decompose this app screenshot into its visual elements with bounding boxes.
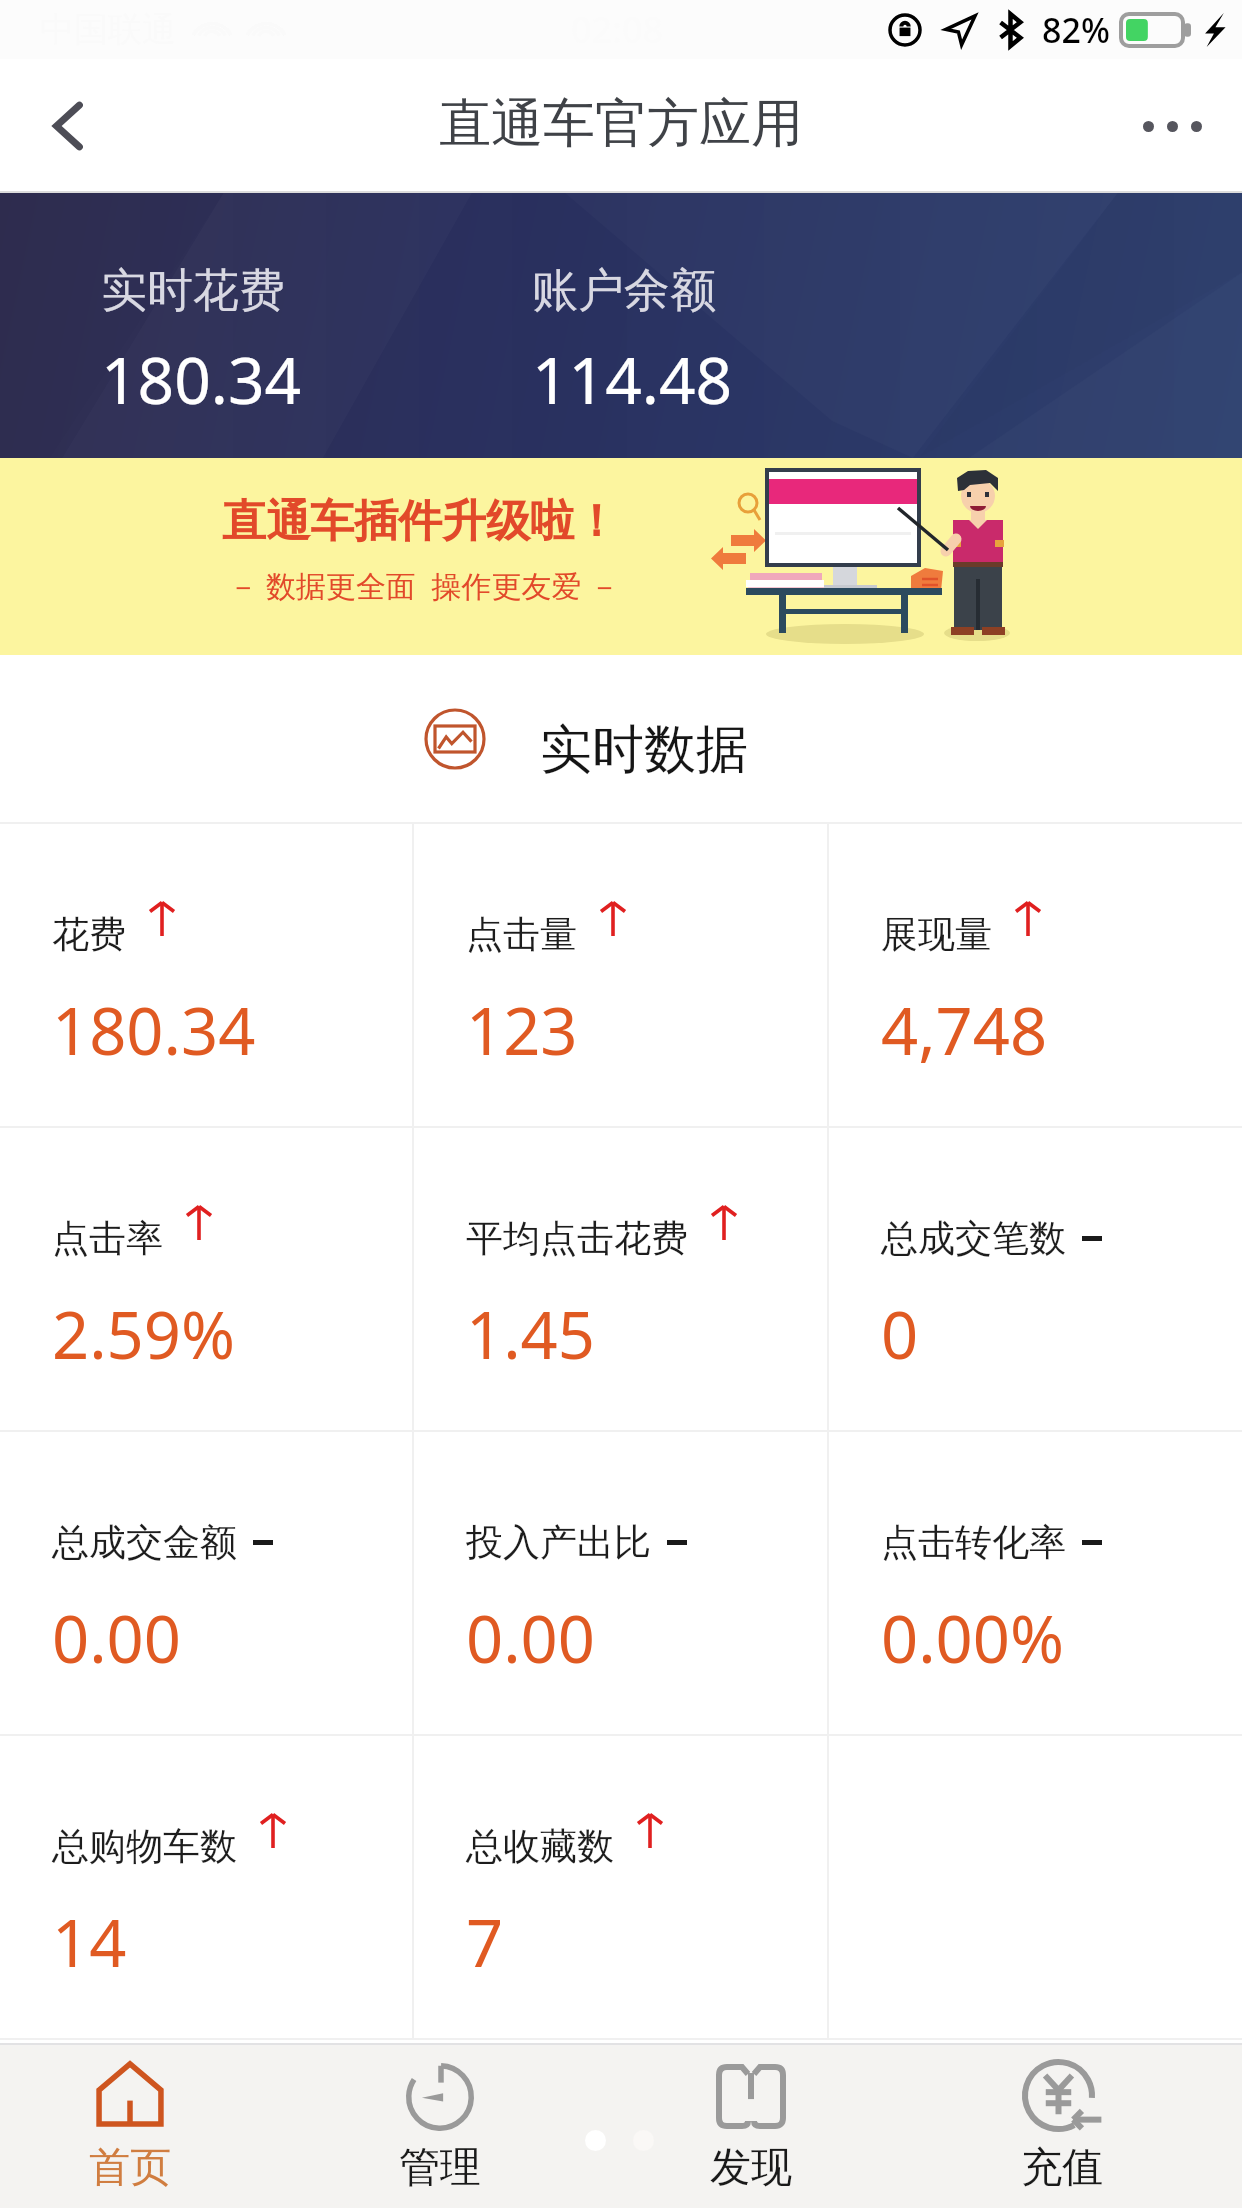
staticText: 实时数据 bbox=[540, 717, 748, 783]
staticText: 0.00 bbox=[466, 1594, 595, 1683]
staticText: 账户余额 bbox=[532, 262, 716, 320]
staticText: 180.34 bbox=[52, 986, 256, 1075]
staticText: 平均点击花费 bbox=[466, 1215, 688, 1262]
button[interactable]: 花费 bbox=[0, 824, 412, 1126]
button[interactable]: 点击率 bbox=[0, 1128, 412, 1430]
staticText: 点击转化率 bbox=[881, 1519, 1066, 1566]
button[interactable]: 总购物车数 bbox=[0, 1736, 412, 2038]
staticText: 4,748 bbox=[881, 986, 1048, 1075]
button[interactable]: 总成交笔数 bbox=[829, 1128, 1242, 1430]
staticText: 0.00 bbox=[52, 1594, 181, 1683]
staticText: 花费 bbox=[52, 911, 126, 958]
button[interactable]: 总收藏数 bbox=[414, 1736, 827, 2038]
staticText: 1.45 bbox=[466, 1290, 595, 1379]
button[interactable]: 首页 bbox=[0, 2043, 285, 2208]
button[interactable]: 点击转化率 bbox=[829, 1432, 1242, 1734]
staticText: 总成交笔数 bbox=[881, 1215, 1066, 1262]
button[interactable]: 账户余额 bbox=[433, 193, 853, 458]
staticText: 14 bbox=[52, 1898, 127, 1987]
button[interactable]: 直通车插件升级啦！ bbox=[0, 458, 1242, 655]
staticText: 总收藏数 bbox=[466, 1823, 614, 1870]
staticText: 点击率 bbox=[52, 1215, 163, 1262]
staticText: － 数据更全面 操作更友爱 － bbox=[228, 565, 620, 606]
staticText: 总购物车数 bbox=[52, 1823, 237, 1870]
staticText: 管理 bbox=[399, 2142, 481, 2194]
button[interactable]: 点击量 bbox=[414, 824, 827, 1126]
staticText: 0.00% bbox=[881, 1594, 1064, 1683]
button[interactable]: 实时数据 bbox=[0, 655, 1242, 822]
button[interactable]: 管理 bbox=[285, 2043, 595, 2208]
staticText: 2.59% bbox=[52, 1290, 235, 1379]
staticText: 发现 bbox=[710, 2142, 792, 2194]
button[interactable]: 投入产出比 bbox=[414, 1432, 827, 1734]
button[interactable]: 平均点击花费 bbox=[414, 1128, 827, 1430]
button[interactable]: 总成交金额 bbox=[0, 1432, 412, 1734]
staticText: 投入产出比 bbox=[466, 1519, 651, 1566]
button[interactable]: 实时花费 bbox=[0, 193, 433, 458]
button[interactable]: Back bbox=[0, 59, 138, 193]
staticText: 123 bbox=[466, 986, 578, 1075]
staticText: 点击量 bbox=[466, 911, 577, 958]
staticText: 总成交金额 bbox=[52, 1519, 237, 1566]
staticText: 首页 bbox=[89, 2142, 171, 2194]
button[interactable]: More options bbox=[1102, 59, 1242, 193]
button[interactable]: 充值 bbox=[906, 2043, 1217, 2208]
button[interactable]: 展现量 bbox=[829, 824, 1242, 1126]
staticText: 直通车插件升级啦！ bbox=[222, 494, 618, 549]
staticText: 7 bbox=[466, 1898, 504, 1987]
staticText: 充值 bbox=[1021, 2142, 1103, 2194]
staticText: 180.34 bbox=[101, 336, 302, 423]
button[interactable]: 发现 bbox=[595, 2043, 906, 2208]
staticText: 实时花费 bbox=[101, 262, 285, 320]
staticText: 114.48 bbox=[532, 336, 733, 423]
staticText: 直通车官方应用 bbox=[439, 91, 803, 157]
staticText: 展现量 bbox=[881, 911, 992, 958]
staticText: 0 bbox=[881, 1290, 919, 1379]
staticText: 82% bbox=[1042, 7, 1110, 53]
